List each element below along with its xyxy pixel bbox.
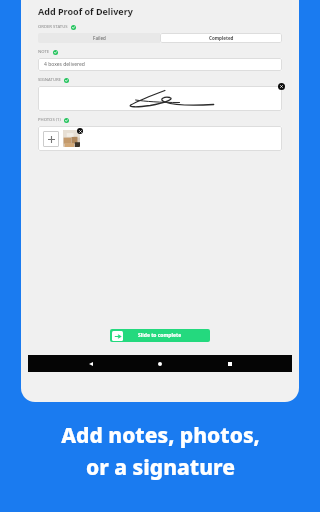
staticText: Slide to complete: [138, 332, 182, 339]
button[interactable]: 4 boxes delivered: [38, 58, 282, 71]
button[interactable]: Remove photo: [77, 128, 83, 134]
staticText: Failed: [93, 35, 106, 41]
staticText: Completed: [209, 35, 234, 41]
button[interactable]: [38, 86, 282, 111]
button[interactable]: Completed: [160, 33, 282, 43]
button[interactable]: Recents: [223, 357, 237, 371]
staticText: or a signature: [86, 453, 235, 482]
button[interactable]: Home: [153, 357, 167, 371]
button[interactable]: Failed: [38, 33, 160, 43]
staticText: Add notes, photos,: [61, 421, 260, 450]
staticText: SIGNATURE: [38, 77, 61, 83]
button[interactable]: Delivery photo: [63, 130, 80, 147]
staticText: Add Proof of Delivery: [38, 5, 133, 17]
button[interactable]: Clear signature: [278, 83, 285, 90]
staticText: ORDER STATUS: [38, 24, 68, 30]
button[interactable]: Add photo: [43, 131, 59, 147]
button[interactable]: Slide to complete: [110, 329, 210, 342]
staticText: 4 boxes delivered: [44, 61, 85, 68]
staticText: NOTE: [38, 49, 50, 55]
staticText: PHOTOS (1): [38, 117, 61, 123]
button[interactable]: Back: [84, 357, 98, 371]
